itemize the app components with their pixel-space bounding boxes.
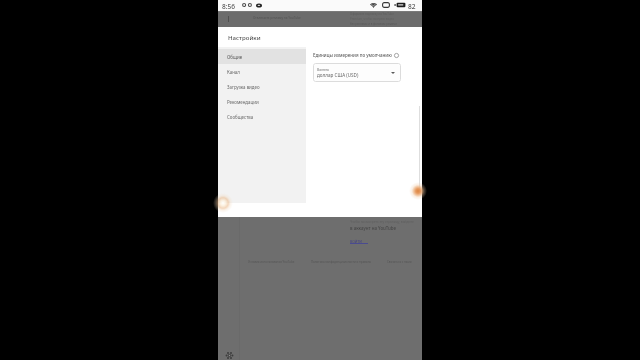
button[interactable]: Загрузка видео xyxy=(218,79,306,94)
staticText: доллар США (USD) xyxy=(317,72,359,78)
staticText: Оформите подписку на YouTube xyxy=(350,12,394,16)
staticText: Отключите рекламу на YouTube xyxy=(253,16,301,20)
staticText: без рекламы и в фоновом режиме xyxy=(350,22,397,26)
button[interactable]: Сообщества xyxy=(218,109,306,124)
button[interactable]: Toolbar xyxy=(218,11,422,28)
button[interactable]: Валюта xyxy=(313,63,401,82)
button[interactable]: Previous xyxy=(213,193,233,213)
staticText: Загрузка видео xyxy=(227,84,260,90)
staticText: Сообщества xyxy=(227,114,254,120)
staticText: Настройки xyxy=(228,33,261,41)
staticText: Валюта xyxy=(317,67,329,71)
staticText: Условия использования YouTube xyxy=(248,260,295,264)
staticText: Канал xyxy=(227,69,240,75)
staticText: 8:56 xyxy=(222,2,236,11)
staticText: 82 xyxy=(408,2,416,11)
staticText: Чтобы посмотреть эту страницу, войдите xyxy=(350,220,414,224)
button[interactable]: Рекомендации xyxy=(218,94,306,109)
button[interactable]: Общие xyxy=(218,49,306,64)
button[interactable]: Next xyxy=(409,182,427,200)
staticText: Общие xyxy=(227,54,243,60)
staticText: Политика конфиденциальности и правила xyxy=(311,260,371,264)
staticText: Связаться с нами xyxy=(387,260,412,264)
button[interactable]: Канал xyxy=(218,64,306,79)
staticText: ВОЙТИ xyxy=(350,239,362,244)
staticText: в аккаунт на YouTube xyxy=(350,225,397,231)
staticText: Единицы измерения по умолчанию xyxy=(313,52,392,58)
staticText: Рекомендации xyxy=(227,99,259,105)
